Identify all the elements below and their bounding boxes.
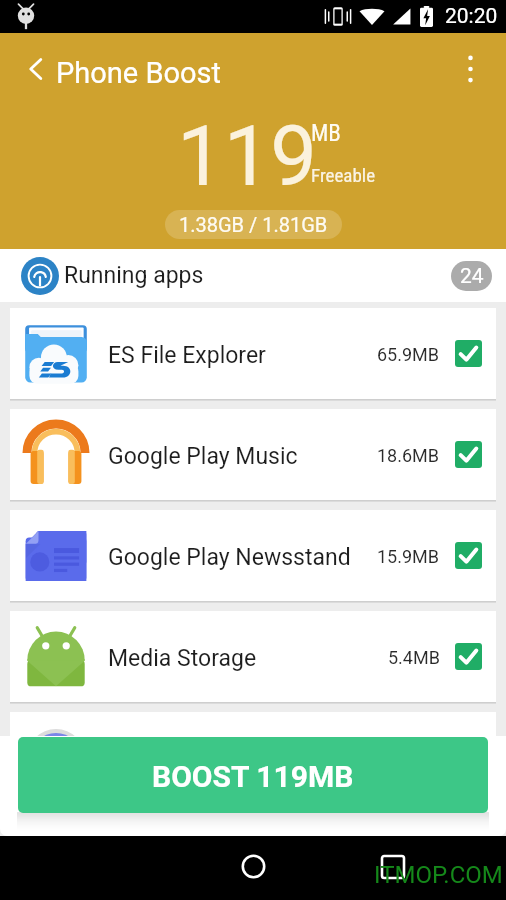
staticText: 20:20 — [445, 4, 498, 29]
button[interactable]: Selected — [455, 542, 482, 569]
button[interactable]: Selected — [455, 340, 482, 367]
button[interactable]: Running apps — [0, 249, 506, 302]
button[interactable]: Home — [230, 850, 277, 897]
staticText: Google Play Music — [108, 443, 298, 470]
button[interactable]: Google Play Music — [10, 409, 496, 500]
button[interactable]: 1.38GB / 1.81GB — [165, 210, 342, 239]
button[interactable]: Google Play Newsstand — [10, 510, 496, 601]
staticText: 24 — [460, 264, 484, 289]
staticText: 15.9MB — [377, 546, 440, 567]
staticText: 5.4MB — [388, 647, 440, 668]
staticText: Google Play Newsstand — [108, 544, 351, 571]
button[interactable]: ES File Explorer — [10, 308, 496, 399]
button[interactable]: Media Storage — [10, 611, 496, 702]
button[interactable]: Selected — [455, 441, 482, 468]
staticText: BOOST 119MB — [152, 759, 354, 794]
staticText: 65.9MB — [377, 344, 440, 365]
staticText: 1.38GB / 1.81GB — [179, 213, 328, 236]
button[interactable]: BOOST 119MB — [18, 737, 488, 813]
staticText: Freeable — [311, 164, 376, 186]
staticText: 18.6MB — [377, 445, 440, 466]
button[interactable]: More options — [451, 50, 489, 88]
staticText: 119 — [177, 108, 317, 205]
staticText: ES File Explorer — [108, 342, 266, 369]
staticText: Google Play services — [108, 746, 321, 773]
staticText: ITMOP.COM — [374, 861, 503, 889]
button[interactable]: Selected — [455, 643, 482, 670]
staticText: Phone Boost — [56, 56, 221, 90]
staticText: Media Storage — [108, 645, 257, 672]
staticText: MB — [311, 120, 341, 147]
button[interactable]: Recents — [371, 850, 416, 895]
button[interactable]: Google Play services — [10, 712, 496, 803]
staticText: Running apps — [64, 262, 204, 289]
button[interactable]: Back — [17, 50, 55, 88]
